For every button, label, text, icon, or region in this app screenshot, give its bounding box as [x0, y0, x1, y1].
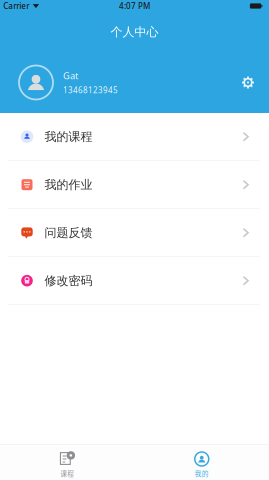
staticText: 修改密码: [44, 273, 92, 288]
button[interactable]: 我的: [134, 445, 269, 480]
staticText: 4:07 PM: [119, 1, 150, 11]
button[interactable]: 我的作业: [0, 161, 269, 209]
button[interactable]: Settings: [237, 71, 259, 93]
staticText: 我的课程: [44, 129, 92, 144]
staticText: 我的作业: [44, 177, 92, 192]
button[interactable]: 问题反馈: [0, 209, 269, 257]
button[interactable]: 我的课程: [0, 113, 269, 161]
staticText: 我的: [195, 468, 209, 478]
staticText: 问题反馈: [44, 225, 92, 240]
staticText: Gat: [63, 69, 78, 82]
staticText: 13468123945: [63, 85, 118, 95]
button[interactable]: 修改密码: [0, 257, 269, 305]
staticText: 课程: [60, 468, 74, 478]
staticText: 个人中心: [110, 25, 158, 39]
staticText: Carrier: [3, 1, 29, 11]
button[interactable]: 课程: [0, 445, 134, 480]
